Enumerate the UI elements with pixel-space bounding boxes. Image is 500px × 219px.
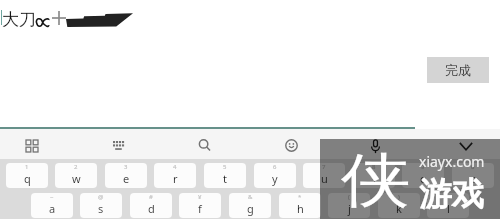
staticText: s (98, 201, 104, 216)
staticText: k (396, 201, 402, 216)
button[interactable]: 7 (303, 163, 345, 188)
staticText: @ (98, 193, 104, 201)
staticText: p (470, 171, 477, 186)
staticText: 游戏 (419, 174, 484, 215)
staticText: ¥ (198, 193, 202, 201)
staticText: t (223, 171, 227, 186)
staticText: r (173, 171, 178, 186)
staticText: # (149, 193, 153, 201)
staticText: 9 (421, 163, 425, 171)
staticText: 8 (372, 163, 376, 171)
button[interactable]: Layout (26, 140, 38, 151)
staticText: 2 (74, 163, 78, 171)
button[interactable]: ) (378, 193, 420, 218)
button[interactable]: 5 (204, 163, 246, 188)
staticText: 大刀 (2, 9, 36, 30)
staticText: ) (398, 193, 400, 201)
staticText: o (420, 171, 427, 186)
staticText: 侠 (341, 144, 411, 218)
button[interactable]: Keyboard (113, 141, 125, 150)
staticText: * (298, 193, 302, 201)
staticText: f (198, 201, 202, 216)
staticText: d (148, 201, 155, 216)
button[interactable]: 1 (6, 163, 48, 188)
button[interactable]: Emoji (285, 139, 298, 152)
staticText: ' (447, 193, 449, 201)
button[interactable]: 9 (402, 163, 444, 188)
button[interactable]: 4 (154, 163, 196, 188)
button[interactable]: ' (427, 193, 469, 218)
button[interactable]: Hide keyboard (459, 142, 473, 151)
staticText: y (272, 171, 278, 186)
button[interactable]: # (130, 193, 172, 218)
staticText: e (123, 171, 130, 186)
button[interactable]: & (229, 193, 271, 218)
staticText: 5 (223, 163, 227, 171)
button[interactable]: * (279, 193, 321, 218)
button[interactable]: Voice input (369, 139, 382, 154)
button[interactable]: ¥ (179, 193, 221, 218)
staticText: l (447, 201, 450, 216)
staticText: u (321, 171, 328, 186)
staticText: h (297, 201, 304, 216)
staticText: w (72, 171, 81, 186)
button[interactable]: 8 (353, 163, 395, 188)
staticText: 7 (322, 163, 326, 171)
staticText: g (247, 201, 254, 216)
button[interactable]: 完成 (427, 57, 489, 83)
button[interactable]: 0 (452, 163, 494, 188)
button[interactable]: 3 (105, 163, 147, 188)
staticText: j (348, 201, 351, 216)
staticText: & (248, 193, 253, 201)
button[interactable]: ( (328, 193, 370, 218)
button[interactable]: Search (198, 138, 212, 152)
staticText: q (24, 171, 31, 186)
staticText: ~ (50, 193, 54, 201)
button[interactable]: ~ (31, 193, 73, 218)
staticText: a (49, 201, 56, 216)
staticText: 1 (25, 163, 29, 171)
staticText: ( (348, 193, 350, 201)
staticText: 3 (124, 163, 128, 171)
staticText: 4 (173, 163, 177, 171)
button[interactable]: @ (80, 193, 122, 218)
staticText: xiayx.com (419, 152, 485, 171)
staticText: i (373, 171, 376, 186)
button[interactable]: 6 (254, 163, 296, 188)
staticText: 完成 (445, 62, 471, 78)
staticText: 0 (471, 163, 475, 171)
staticText: 6 (273, 163, 277, 171)
button[interactable]: 2 (55, 163, 97, 188)
